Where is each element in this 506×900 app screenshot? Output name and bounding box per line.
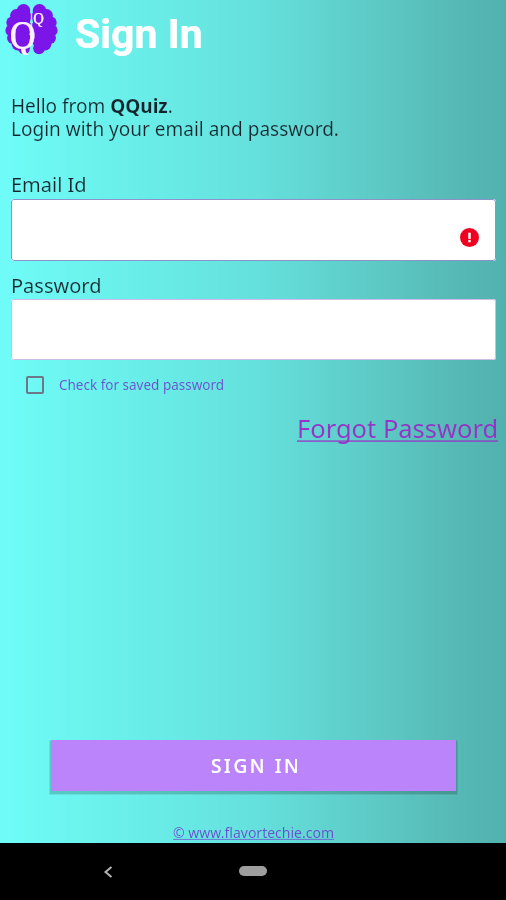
staticText: Email Id bbox=[11, 171, 87, 198]
button[interactable]: Home bbox=[239, 866, 267, 876]
staticText: Q bbox=[33, 7, 45, 27]
staticText: Sign In bbox=[75, 10, 203, 58]
button[interactable] bbox=[11, 299, 496, 360]
button[interactable]: SIGN IN bbox=[51, 740, 456, 791]
button[interactable]: Forgot Password bbox=[297, 411, 499, 446]
staticText: Password bbox=[11, 272, 102, 299]
button[interactable]: © www.flavortechie.com bbox=[173, 823, 334, 842]
staticText: SIGN IN bbox=[211, 753, 302, 779]
button[interactable]: Check for saved password bbox=[22, 372, 229, 398]
button[interactable]: Back bbox=[91, 854, 127, 890]
staticText: Q bbox=[9, 8, 37, 55]
button[interactable] bbox=[11, 199, 496, 261]
staticText: Check for saved password bbox=[59, 376, 225, 394]
staticText: Hello from QQuiz. Login with your email … bbox=[11, 93, 339, 142]
